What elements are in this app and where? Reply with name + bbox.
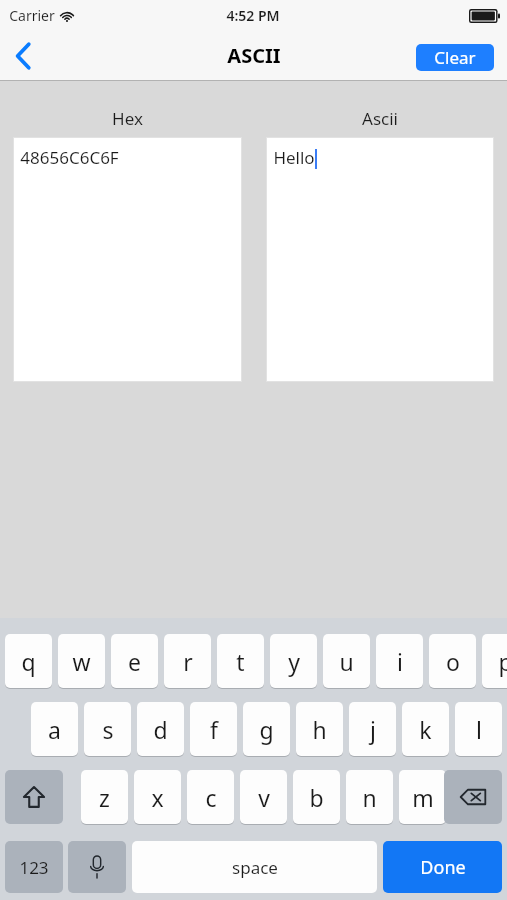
button[interactable]: z	[81, 770, 128, 824]
staticText: p	[498, 646, 507, 677]
button[interactable]: Back	[0, 31, 46, 81]
staticText: Hello	[273, 146, 315, 169]
staticText: h	[312, 714, 327, 745]
staticText: w	[72, 646, 91, 677]
button[interactable]: u	[323, 634, 370, 688]
button[interactable]: l	[455, 702, 502, 756]
staticText: u	[339, 646, 354, 677]
staticText: Done	[420, 855, 466, 880]
staticText: ASCII	[227, 42, 281, 69]
button[interactable]: f	[190, 702, 237, 756]
button[interactable]: x	[134, 770, 181, 824]
button[interactable]: c	[187, 770, 234, 824]
button[interactable]: s	[84, 702, 131, 756]
staticText: x	[151, 782, 164, 813]
staticText: k	[419, 714, 432, 745]
staticText: space	[232, 856, 278, 879]
staticText: l	[476, 714, 482, 745]
staticText: n	[362, 782, 377, 813]
staticText: Clear	[434, 46, 476, 69]
button[interactable]: q	[5, 634, 52, 688]
staticText: Carrier	[9, 6, 55, 25]
button[interactable]: n	[346, 770, 393, 824]
button[interactable]: y	[270, 634, 317, 688]
button[interactable]: Shift	[5, 770, 63, 824]
staticText: d	[153, 714, 168, 745]
staticText: b	[309, 782, 324, 813]
staticText: g	[259, 714, 274, 745]
button[interactable]: Clear	[416, 44, 494, 71]
staticText: c	[205, 782, 217, 813]
staticText: 4:52 PM	[226, 6, 280, 25]
staticText: Hex	[112, 107, 143, 130]
button[interactable]: i	[376, 634, 423, 688]
staticText: a	[48, 714, 61, 745]
button[interactable]: r	[164, 634, 211, 688]
staticText: i	[397, 646, 403, 677]
button[interactable]: Done	[383, 841, 502, 893]
staticText: j	[370, 714, 376, 745]
button[interactable]: a	[31, 702, 78, 756]
button[interactable]: v	[240, 770, 287, 824]
staticText: m	[412, 782, 434, 813]
staticText: s	[102, 714, 114, 745]
staticText: o	[446, 646, 460, 677]
staticText: 48656C6C6F	[20, 146, 119, 169]
button[interactable]: d	[137, 702, 184, 756]
staticText: y	[288, 646, 300, 677]
button[interactable]: 123	[5, 841, 63, 893]
button[interactable]: Dictate	[68, 841, 126, 893]
button[interactable]: k	[402, 702, 449, 756]
staticText: e	[128, 646, 141, 677]
button[interactable]: b	[293, 770, 340, 824]
button[interactable]: space	[132, 841, 377, 893]
staticText: Ascii	[362, 107, 398, 130]
staticText: q	[21, 646, 36, 677]
button[interactable]: 48656C6C6F	[14, 138, 241, 381]
staticText: v	[258, 782, 270, 813]
button[interactable]: g	[243, 702, 290, 756]
button[interactable]: e	[111, 634, 158, 688]
button[interactable]: p	[482, 634, 507, 688]
button[interactable]: t	[217, 634, 264, 688]
button[interactable]: Hello	[267, 138, 493, 381]
staticText: r	[183, 646, 193, 677]
button[interactable]: o	[429, 634, 476, 688]
staticText: 123	[19, 856, 49, 879]
staticText: f	[210, 714, 218, 745]
button[interactable]: j	[349, 702, 396, 756]
button[interactable]: w	[58, 634, 105, 688]
button[interactable]: m	[399, 770, 446, 824]
button[interactable]: Backspace	[444, 770, 502, 824]
button[interactable]: h	[296, 702, 343, 756]
staticText: z	[99, 782, 110, 813]
staticText: t	[236, 646, 245, 677]
